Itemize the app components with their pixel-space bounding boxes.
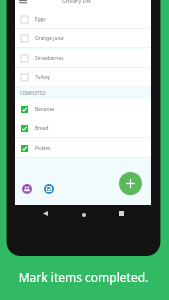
staticText: Grocery List	[62, 0, 91, 4]
staticText: Mark items completed.	[0, 269, 168, 285]
button[interactable]: Orange juice	[15, 29, 151, 48]
button[interactable]: Pickles	[15, 138, 151, 158]
button[interactable]: Bananas	[15, 99, 151, 119]
staticText: Pickles	[35, 145, 51, 152]
staticText: Eggs	[35, 16, 46, 23]
button[interactable]: Eggs	[15, 10, 151, 29]
staticText: Bread	[35, 125, 49, 132]
button[interactable]: Add item	[119, 172, 142, 195]
staticText: Turkey	[35, 74, 50, 81]
staticText: Strawberries	[35, 55, 64, 62]
button[interactable]: Strawberries	[15, 49, 151, 68]
button[interactable]: Bread	[15, 118, 151, 138]
button[interactable]: Home	[77, 208, 90, 221]
staticText: Bananas	[35, 106, 55, 113]
button[interactable]: Turkey	[15, 68, 151, 87]
button[interactable]: Share list	[22, 184, 32, 194]
button[interactable]: Edit list	[44, 184, 54, 194]
button[interactable]: Recents	[115, 207, 128, 220]
button[interactable]: Open navigation menu	[19, 0, 27, 3]
staticText: COMPLETED	[20, 90, 46, 96]
button[interactable]: Back	[39, 207, 52, 220]
staticText: Orange juice	[35, 35, 64, 42]
